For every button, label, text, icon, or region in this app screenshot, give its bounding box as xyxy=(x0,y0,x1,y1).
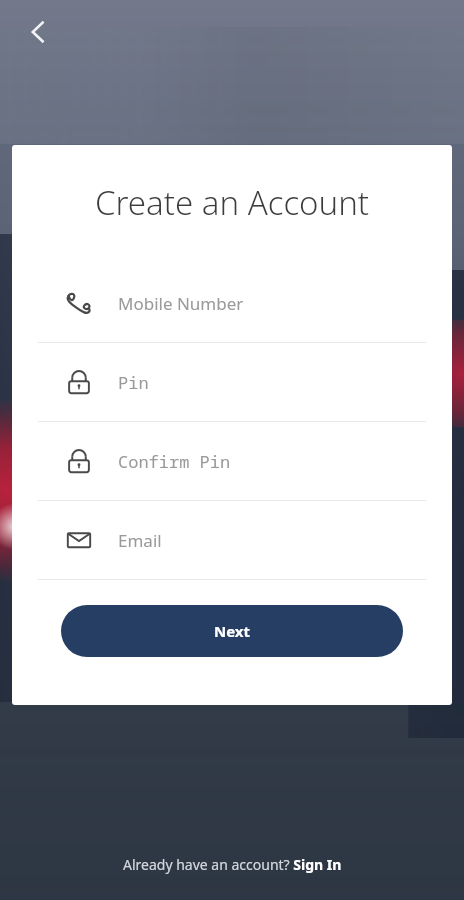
staticText: Create an Account xyxy=(12,180,452,225)
staticText: Mobile Number xyxy=(118,292,244,315)
staticText: Already have an account? Sign In xyxy=(123,855,342,874)
button[interactable]: Email xyxy=(12,501,452,579)
button[interactable]: Back xyxy=(16,10,60,54)
staticText: Email xyxy=(118,529,162,552)
button[interactable]: Mobile Number xyxy=(12,264,452,342)
staticText: Pin xyxy=(118,371,149,394)
staticText: Next xyxy=(214,621,251,641)
button[interactable]: Pin xyxy=(12,343,452,421)
button[interactable]: Confirm Pin xyxy=(12,422,452,500)
button[interactable]: Already have an account? Sign In xyxy=(111,849,354,880)
staticText: Confirm Pin xyxy=(118,450,231,473)
button[interactable]: Next xyxy=(61,605,403,657)
